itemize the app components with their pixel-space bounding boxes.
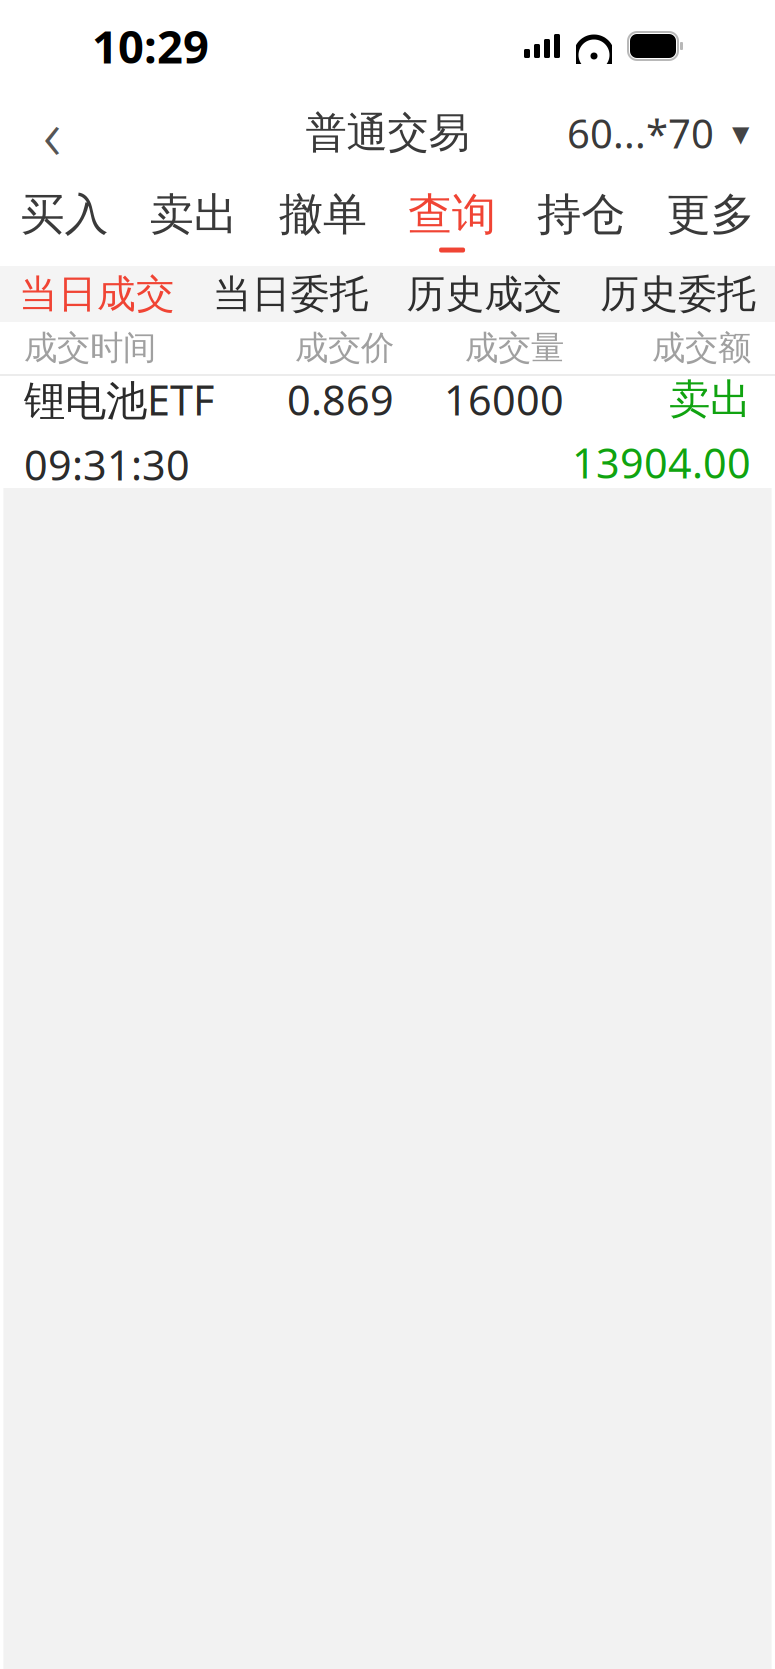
button[interactable]: 卖出 [129,174,258,266]
staticText: 查询 [408,187,496,241]
staticText: 当日成交 [19,270,175,318]
button[interactable]: Back [16,97,88,169]
staticText: 持仓 [537,187,625,241]
staticText: 10:29 [92,16,209,76]
staticText: 卖出 [150,187,238,241]
button[interactable]: 更多 [646,174,775,266]
staticText: ‹ [43,87,61,179]
button[interactable]: 历史委托 [581,266,775,322]
staticText: 0.869 [287,372,394,427]
staticText: 撤单 [279,187,367,241]
button[interactable]: 当日委托 [194,266,388,322]
button[interactable]: 锂电池ETF [0,374,775,488]
staticText: 成交时间 [24,327,156,368]
button[interactable]: 持仓 [517,174,646,266]
staticText: 13904.00 [572,435,751,490]
button[interactable]: 历史成交 [387,266,581,322]
button[interactable]: 60...*70 [557,97,759,169]
staticText: 历史成交 [406,270,562,318]
staticText: 60...*70 [567,106,714,159]
staticText [553,437,564,492]
button[interactable]: 买入 [0,174,129,266]
staticText: 普通交易 [305,108,469,158]
staticText: 历史委托 [600,270,756,318]
staticText: ▾ [732,113,749,153]
staticText [383,437,394,492]
staticText: 锂电池ETF [24,372,214,427]
staticText: 卖出 [669,374,751,425]
staticText: 16000 [444,372,564,427]
staticText: 成交价 [295,327,394,368]
staticText: 更多 [666,187,754,241]
staticText: 买入 [21,187,109,241]
button[interactable]: 撤单 [258,174,387,266]
staticText: 当日委托 [213,270,369,318]
staticText: 09:31:30 [24,437,190,492]
staticText: 成交额 [652,327,751,368]
staticText: 成交量 [465,327,564,368]
button[interactable]: 查询 [387,174,517,266]
button[interactable]: 当日成交 [0,266,194,322]
